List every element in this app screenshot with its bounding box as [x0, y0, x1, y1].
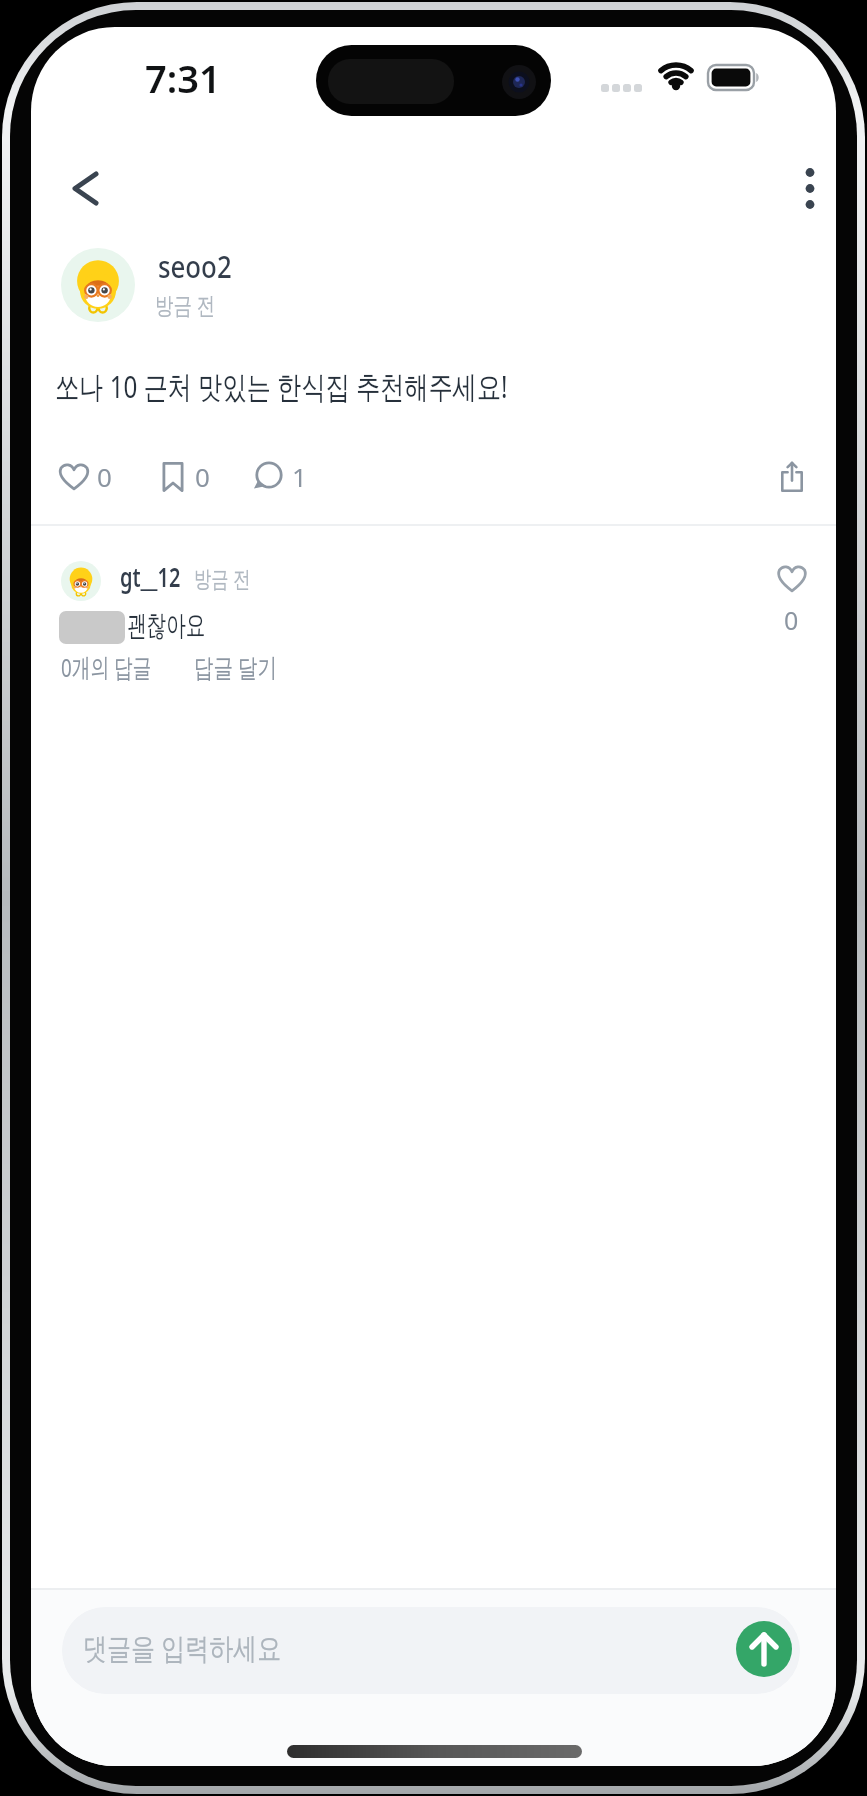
staticText: 댓글을 입력하세요 — [83, 1627, 281, 1668]
staticText: seoo2 — [158, 246, 232, 287]
staticText: 1 — [292, 459, 307, 494]
staticText: 방금 전 — [155, 288, 216, 321]
staticText: 방금 전 — [194, 562, 250, 593]
button[interactable] — [157, 457, 197, 495]
staticText: 0 — [97, 459, 112, 494]
staticText: 괜찮아요 — [127, 608, 205, 643]
staticText: 7:31 — [145, 52, 221, 104]
button[interactable] — [59, 166, 103, 210]
button[interactable] — [775, 563, 809, 595]
button[interactable]: 0개의 답글 — [55, 645, 195, 685]
staticText: 답글 달기 — [194, 649, 277, 685]
button[interactable]: 답글 달기 — [188, 645, 318, 685]
staticText: 0 — [784, 603, 799, 637]
button[interactable] — [736, 1621, 792, 1677]
staticText: gt__12 — [120, 558, 181, 595]
button[interactable] — [55, 459, 115, 495]
button[interactable] — [788, 166, 832, 210]
staticText: 쏘나 10 근처 맛있는 한식집 추천해주세요! — [55, 365, 508, 407]
staticText: 0 — [195, 459, 210, 494]
button[interactable] — [775, 457, 811, 497]
staticText: 0개의 답글 — [61, 649, 152, 685]
button[interactable]: 댓글을 입력하세요 — [62, 1607, 800, 1694]
button[interactable] — [251, 459, 291, 495]
